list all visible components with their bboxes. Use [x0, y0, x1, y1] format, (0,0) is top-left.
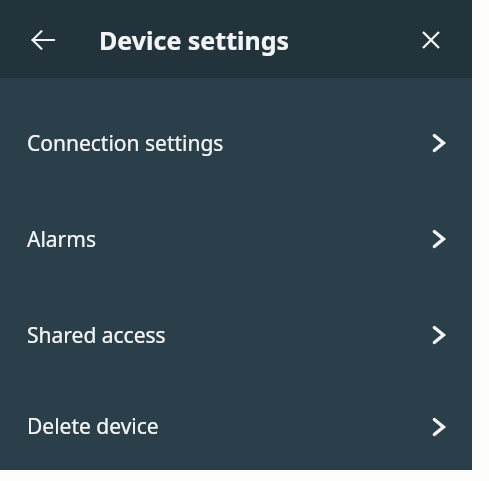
button[interactable]: Shared access — [0, 287, 472, 383]
button[interactable]: Alarms — [0, 191, 472, 287]
staticText: Shared access — [27, 321, 404, 350]
staticText: Delete device — [27, 412, 404, 441]
button[interactable]: Back — [21, 18, 65, 62]
staticText: Alarms — [27, 225, 404, 254]
button[interactable]: Connection settings — [0, 95, 472, 191]
staticText: Connection settings — [27, 129, 404, 158]
button[interactable]: Close — [410, 19, 452, 61]
staticText: Device settings — [99, 23, 290, 57]
button[interactable]: Delete device — [0, 383, 472, 470]
